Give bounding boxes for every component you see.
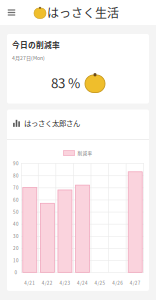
- staticText: 4/21: [24, 279, 35, 286]
- staticText: 4/27: [130, 279, 141, 286]
- staticText: 10: [13, 257, 19, 263]
- staticText: 70: [13, 184, 19, 191]
- button[interactable]: Menu: [0, 0, 23, 25]
- staticText: 83 %: [51, 73, 80, 92]
- staticText: 4/22: [42, 279, 53, 286]
- staticText: 削減率: [77, 150, 92, 156]
- staticText: 30: [13, 233, 19, 239]
- staticText: 80: [13, 172, 19, 179]
- staticText: 4/26: [112, 279, 123, 286]
- staticText: 4/25: [95, 279, 106, 286]
- staticText: 0: [14, 269, 17, 276]
- staticText: はっさく生活: [47, 4, 119, 21]
- staticText: 20: [13, 245, 19, 251]
- staticText: 4/23: [59, 279, 70, 286]
- staticText: はっさく太郎さん: [24, 117, 80, 128]
- staticText: 今日の削減率: [12, 39, 60, 50]
- staticText: 50: [13, 208, 19, 215]
- staticText: 4月27日(Mon): [12, 54, 45, 61]
- staticText: 60: [13, 196, 19, 203]
- staticText: 40: [13, 221, 19, 227]
- staticText: 90: [13, 160, 19, 167]
- staticText: 4/24: [77, 279, 88, 286]
